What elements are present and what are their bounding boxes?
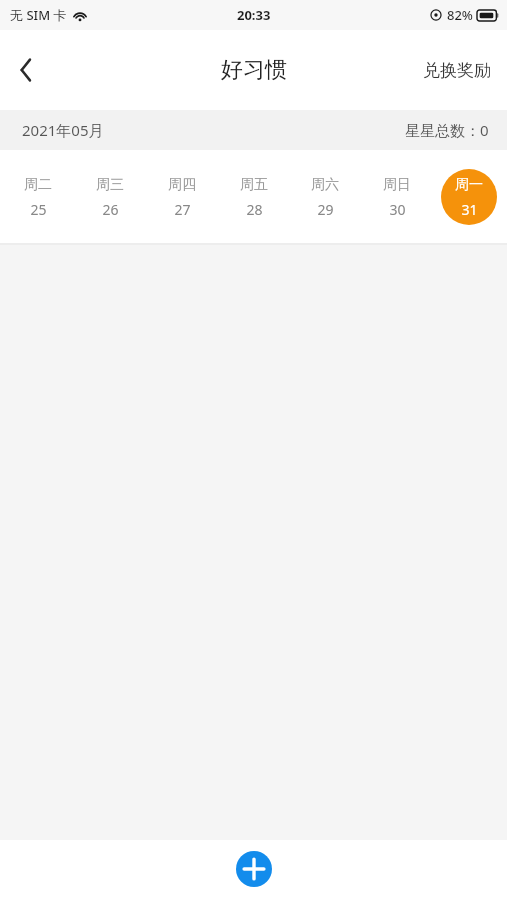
staticText: 29 bbox=[317, 200, 334, 219]
staticText: 周六 bbox=[311, 176, 339, 194]
button[interactable]: 周二 bbox=[10, 169, 66, 225]
staticText: 26 bbox=[102, 200, 119, 219]
button[interactable]: Add habit bbox=[236, 851, 272, 887]
staticText: 好习惯 bbox=[221, 56, 287, 84]
button[interactable]: Back bbox=[0, 44, 52, 96]
staticText: 兑换奖励 bbox=[423, 60, 491, 81]
button[interactable]: 兑换奖励 bbox=[407, 48, 507, 93]
staticText: 20:33 bbox=[237, 6, 271, 24]
staticText: 30 bbox=[389, 200, 406, 219]
button[interactable]: 周四 bbox=[154, 169, 210, 225]
staticText: 周一 bbox=[455, 176, 483, 194]
staticText: 25 bbox=[30, 200, 47, 219]
staticText: 2021年05月 bbox=[22, 120, 104, 140]
staticText: 星星总数：0 bbox=[405, 120, 489, 140]
staticText: 周二 bbox=[24, 176, 52, 194]
staticText: 无 SIM 卡 bbox=[10, 6, 67, 24]
staticText: 周四 bbox=[168, 176, 196, 194]
staticText: 31 bbox=[461, 200, 478, 219]
staticText: 周五 bbox=[240, 176, 268, 194]
button[interactable]: 周一 bbox=[441, 169, 497, 225]
staticText: 27 bbox=[174, 200, 191, 219]
button[interactable]: 周五 bbox=[226, 169, 282, 225]
button[interactable]: 周三 bbox=[82, 169, 138, 225]
button[interactable]: 周日 bbox=[369, 169, 425, 225]
button[interactable]: 周六 bbox=[297, 169, 353, 225]
staticText: 周三 bbox=[96, 176, 124, 194]
staticText: 周日 bbox=[383, 176, 411, 194]
staticText: 28 bbox=[246, 200, 263, 219]
staticText: 82% bbox=[447, 6, 473, 24]
